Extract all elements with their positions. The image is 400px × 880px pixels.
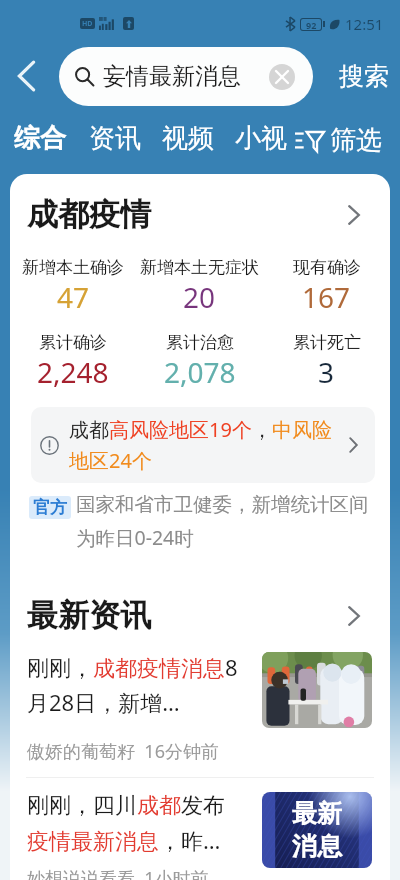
staticText: 累计确诊 xyxy=(39,332,107,353)
button[interactable]: 成都疫情 xyxy=(10,195,390,234)
staticText: 12:51 xyxy=(345,14,384,34)
button[interactable]: 搜索 xyxy=(328,51,400,101)
staticText: 刚刚，四川成都发布 疫情最新消息，昨… xyxy=(27,792,225,855)
staticText: 视频 xyxy=(162,122,214,155)
button[interactable]: 成都高风险地区19个，中风险地区24个 xyxy=(31,407,375,483)
staticText: 20 xyxy=(183,278,216,316)
staticText: 综合 xyxy=(14,122,66,155)
staticText: 累计死亡 xyxy=(293,332,361,353)
staticText: 筛选 xyxy=(330,124,382,157)
staticText: 现有确诊 xyxy=(293,257,361,278)
button[interactable]: 妄情最新消息 xyxy=(59,47,313,106)
button[interactable]: 小视 xyxy=(235,122,287,163)
button[interactable]: 视频 xyxy=(162,122,214,163)
staticText: 成都疫情 xyxy=(27,195,151,234)
staticText: 47 xyxy=(57,278,90,316)
staticText: 新增本土无症状 xyxy=(140,257,259,278)
staticText: 小视 xyxy=(235,122,287,155)
staticText: 3 xyxy=(318,353,335,391)
staticText: 官方 xyxy=(33,497,67,518)
staticText: 2,078 xyxy=(164,353,236,391)
staticText: 消息 xyxy=(292,831,342,862)
button[interactable]: 综合 xyxy=(14,122,66,163)
staticText: HD xyxy=(82,19,93,29)
staticText: 新增本土确诊 xyxy=(22,257,124,278)
staticText: 92 xyxy=(306,19,317,30)
staticText: 累计治愈 xyxy=(166,332,234,353)
staticText: 2,248 xyxy=(37,353,109,391)
staticText: 傲娇的葡萄籽 16分钟前 xyxy=(27,739,219,764)
staticText: 资讯 xyxy=(89,122,141,155)
button[interactable]: 资讯 xyxy=(89,122,141,163)
staticText: 成都高风险地区19个，中风险地区24个 xyxy=(69,416,341,474)
staticText: 妙想说说看看 1小时前 xyxy=(27,866,209,880)
button[interactable]: 筛选 xyxy=(295,122,382,157)
button[interactable]: 刚刚，成都疫情消息8月28日，新增… xyxy=(10,652,390,777)
staticText: 搜索 xyxy=(339,61,389,92)
button[interactable]: 最新资讯 xyxy=(10,596,390,635)
staticText: 刚刚，成都疫情消息8月28日，新增… xyxy=(27,652,254,717)
button[interactable]: 刚刚，四川成都发布 疫情最新消息，昨… xyxy=(10,778,390,880)
button[interactable]: Clear xyxy=(269,64,295,90)
staticText: 妄情最新消息 xyxy=(103,62,241,91)
staticText: 最新资讯 xyxy=(27,596,151,635)
button[interactable]: Back xyxy=(4,54,48,98)
staticText: 国家和省市卫健委，新增统计区间 为昨日0-24时 xyxy=(76,492,369,551)
staticText: 最新 xyxy=(292,798,342,829)
staticText: 167 xyxy=(302,278,351,316)
